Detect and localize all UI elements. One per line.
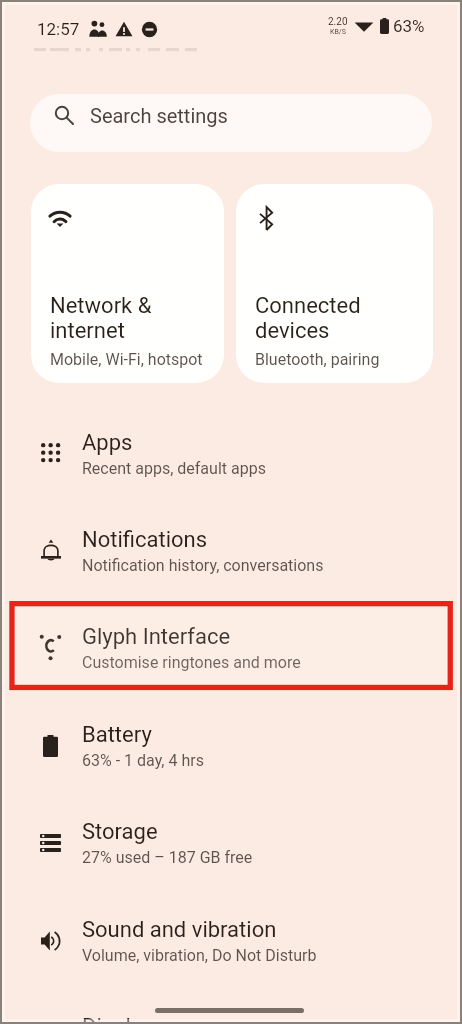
staticText: Customise ringtones and more (82, 653, 301, 672)
staticText: KB/S (330, 28, 346, 36)
staticText: Battery (82, 722, 152, 748)
staticText: Apps (82, 430, 133, 456)
staticText: Notifications (82, 527, 208, 553)
staticText: Mobile, Wi-Fi, hotspot (50, 350, 203, 369)
staticText: Bluetooth, pairing (255, 350, 380, 369)
button[interactable]: Apps (0, 402, 462, 499)
other: Search (54, 105, 74, 125)
staticText: internet (50, 318, 125, 344)
staticText: Recent apps, default apps (82, 459, 266, 478)
staticText: Storage (82, 819, 158, 845)
other: Bluetooth (260, 207, 274, 230)
staticText: Network & (50, 293, 152, 319)
staticText: Glyph Interface (82, 624, 231, 650)
staticText: Connected (255, 293, 361, 319)
button[interactable]: Storage (0, 791, 462, 888)
button[interactable]: Display (0, 986, 462, 1024)
button[interactable]: Bluetooth (236, 184, 433, 383)
button[interactable]: Glyph Interface (0, 596, 462, 693)
button[interactable]: Sound and vibration (0, 889, 462, 986)
staticText: 2.20 (328, 16, 348, 28)
staticText: Search settings (90, 104, 228, 127)
staticText: Display (82, 1014, 154, 1024)
staticText: 63% - 1 day, 4 hrs (82, 751, 204, 770)
staticText: devices (255, 318, 330, 344)
staticText: 63% (393, 16, 425, 36)
button[interactable]: Battery (0, 694, 462, 791)
button[interactable]: Search (30, 94, 432, 152)
button[interactable]: Wi-Fi (31, 184, 224, 383)
other: Wi-Fi (48, 210, 72, 227)
staticText: 12:57 (37, 19, 80, 39)
button[interactable]: Notifications (0, 499, 462, 596)
staticText: Volume, vibration, Do Not Disturb (82, 946, 317, 965)
staticText: Sound and vibration (82, 917, 277, 943)
staticText: 27% used – 187 GB free (82, 848, 253, 867)
staticText: Notification history, conversations (82, 556, 324, 575)
